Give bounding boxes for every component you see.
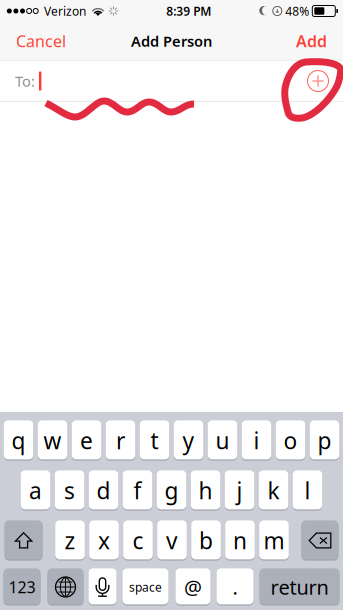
staticText: a [29,475,42,505]
staticText: s [64,475,75,505]
button[interactable]: w [38,421,67,460]
button[interactable]: Shift [5,521,43,560]
staticText: h [198,475,212,505]
button[interactable]: y [174,421,203,460]
button[interactable]: k [259,471,288,510]
staticText: e [80,425,93,455]
staticText: i [253,425,259,455]
button[interactable]: h [191,471,220,510]
staticText: b [199,525,213,555]
staticText: Add [296,30,327,52]
staticText: space [129,579,162,595]
button[interactable]: Delete [301,521,338,560]
staticText: n [233,525,247,555]
staticText: c [132,525,143,555]
button[interactable]: v [157,521,187,560]
staticText: Add Person [131,31,212,51]
staticText: Cancel [16,30,66,52]
staticText: k [267,475,279,505]
staticText: m [263,525,284,555]
button[interactable]: e [72,421,101,460]
button[interactable]: b [191,521,221,560]
button[interactable]: f [123,471,152,510]
button[interactable]: x [89,521,119,560]
staticText: t [150,425,158,455]
button[interactable]: @ [175,569,210,605]
button[interactable]: m [259,521,289,560]
button[interactable]: . [216,569,253,605]
button[interactable]: l [293,471,322,510]
button[interactable]: 123 [3,569,40,605]
button[interactable]: c [123,521,153,560]
staticText: u [215,425,229,455]
staticText: @ [184,574,202,600]
staticText: 48% [285,3,309,19]
staticText: . [232,574,237,600]
button[interactable]: a [21,471,50,510]
staticText: 123 [8,576,35,598]
staticText: r [116,425,125,455]
staticText: d [96,475,110,505]
button[interactable]: u [208,421,237,460]
staticText: 8:39 PM [166,3,211,19]
button[interactable]: t [140,421,169,460]
button[interactable]: Dictate [88,569,116,605]
staticText: l [304,475,310,505]
button[interactable]: p [310,421,339,460]
button[interactable]: Next keyboard [47,569,83,605]
button[interactable]: Cancel [6,23,76,59]
button[interactable]: space [122,569,168,605]
staticText: To: [15,71,35,91]
staticText: Verizon [44,3,86,19]
staticText: z [64,525,75,555]
staticText: v [166,525,178,555]
button[interactable]: Add contact [302,65,334,97]
button[interactable]: o [276,421,305,460]
button[interactable]: s [55,471,84,510]
button[interactable]: q [4,421,33,460]
button[interactable]: d [89,471,118,510]
button[interactable]: n [225,521,255,560]
staticText: p [317,425,331,455]
staticText: x [98,525,110,555]
button[interactable]: i [242,421,271,460]
button[interactable]: Add [286,23,337,59]
button[interactable]: j [225,471,254,510]
staticText: j [236,475,242,505]
staticText: q [11,425,25,455]
staticText: return [270,574,328,600]
button[interactable]: r [106,421,135,460]
staticText: o [283,425,297,455]
button[interactable]: z [55,521,85,560]
staticText: w [43,425,61,455]
staticText: g [164,475,178,505]
button[interactable]: g [157,471,186,510]
staticText: y [182,425,194,455]
button[interactable]: return [259,569,339,605]
staticText: f [133,475,141,505]
